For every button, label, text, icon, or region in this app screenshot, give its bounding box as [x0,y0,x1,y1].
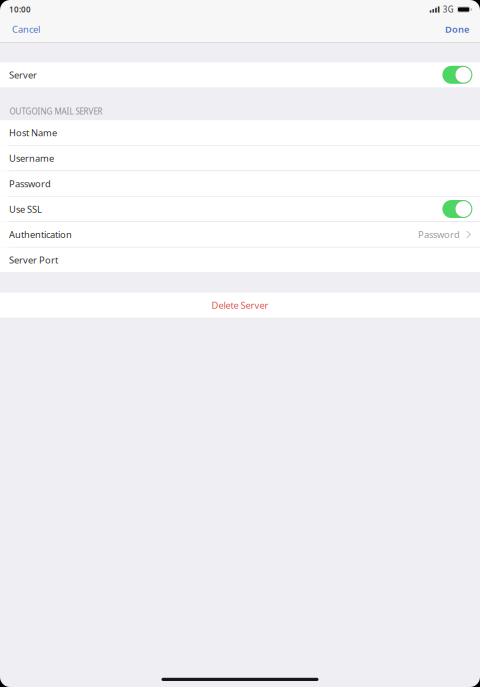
staticText: Username [9,152,54,164]
button[interactable]: Done [435,16,480,42]
staticText: Use SSL [9,203,42,215]
button[interactable]: Authentication [0,222,480,247]
staticText: Done [445,23,469,35]
staticText: OUTGOING MAIL SERVER [9,106,102,117]
button[interactable]: Server [434,63,472,87]
button[interactable]: Delete Server [0,293,480,318]
staticText: Password [9,177,51,190]
staticText: Cancel [12,23,40,35]
button[interactable]: Server Port [0,247,480,272]
staticText: Password [418,228,460,241]
staticText: Delete Server [211,299,268,311]
button[interactable]: Use SSL [434,197,472,221]
button[interactable]: Host Name [0,120,480,145]
button[interactable]: Password [0,171,480,196]
button[interactable]: Username [0,146,480,171]
staticText: 10:00 [9,4,31,15]
staticText: 3G [443,4,454,15]
staticText: Host Name [9,126,57,139]
staticText: Authentication [9,228,72,241]
button[interactable]: Cancel [0,16,50,42]
staticText: Server Port [9,254,58,266]
staticText: Server [9,69,37,81]
